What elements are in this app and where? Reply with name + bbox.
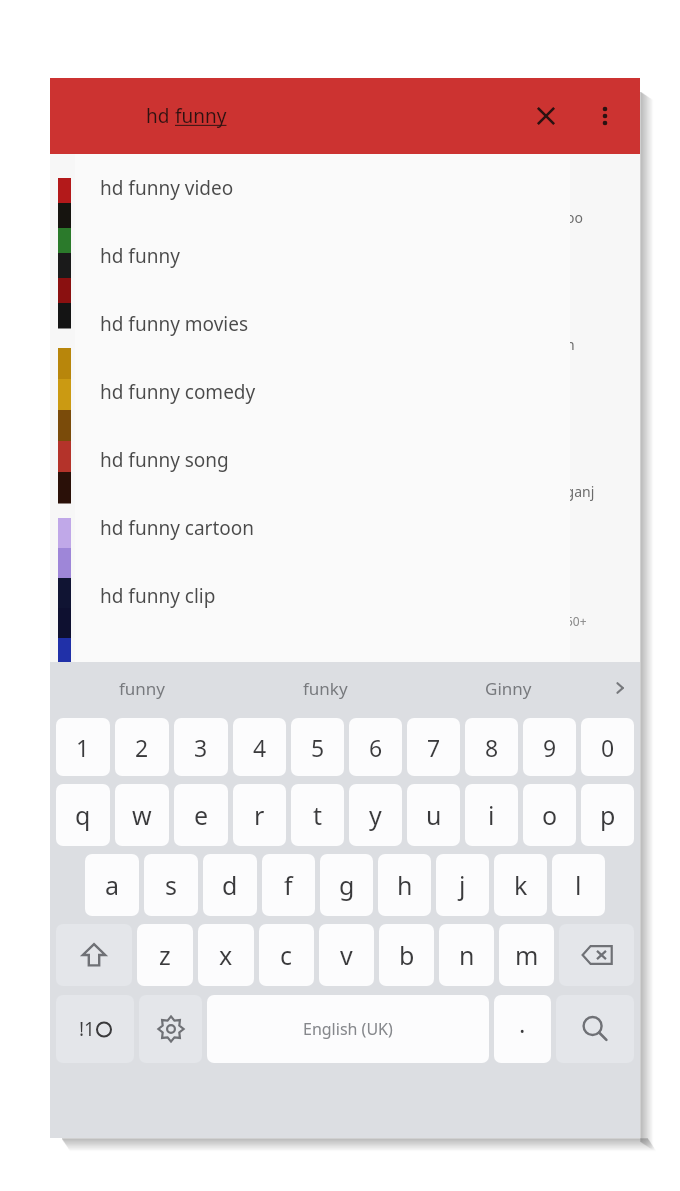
button[interactable]: l	[552, 854, 605, 916]
button[interactable]: More suggestions	[600, 662, 640, 714]
staticText: funny	[175, 103, 227, 129]
staticText: g	[339, 868, 355, 902]
staticText: 2	[135, 732, 149, 763]
staticText: x	[219, 938, 233, 972]
button[interactable]: a	[85, 854, 139, 916]
staticText: d	[222, 868, 238, 902]
button[interactable]: b	[379, 924, 434, 986]
button[interactable]: Search	[556, 995, 634, 1063]
button[interactable]: r	[233, 784, 286, 846]
button[interactable]: hd funny clip	[75, 562, 570, 630]
staticText: 7	[427, 732, 441, 763]
staticText: hd funny video	[100, 175, 234, 201]
button[interactable]: k	[494, 854, 547, 916]
staticText: hd funny	[100, 243, 180, 269]
button[interactable]: v	[319, 924, 374, 986]
staticText: f	[284, 868, 293, 902]
button[interactable]: 9	[523, 718, 576, 776]
button[interactable]: Ginny	[417, 662, 600, 714]
button[interactable]: 4	[233, 718, 286, 776]
button[interactable]: e	[174, 784, 228, 846]
button[interactable]: hd funny movies	[75, 290, 570, 358]
staticText: w	[132, 798, 152, 832]
staticText: j	[459, 868, 466, 902]
staticText: funky	[303, 677, 348, 700]
staticText: hd	[146, 103, 175, 129]
staticText: o	[542, 798, 558, 832]
button[interactable]: 7	[407, 718, 460, 776]
staticText: b	[399, 938, 415, 972]
staticText: !1	[79, 1016, 95, 1042]
button[interactable]: q	[56, 784, 110, 846]
button[interactable]: hd funny song	[75, 426, 570, 494]
button[interactable]: y	[349, 784, 402, 846]
button[interactable]: hd funny video	[75, 154, 570, 222]
staticText: q	[75, 798, 91, 832]
button[interactable]: d	[203, 854, 257, 916]
button[interactable]: c	[259, 924, 314, 986]
staticText: 1	[76, 732, 90, 763]
staticText: u	[426, 798, 442, 832]
staticText: 5	[311, 732, 325, 763]
button[interactable]: More options	[574, 85, 636, 147]
staticText: 8	[485, 732, 499, 763]
button[interactable]: 1	[56, 718, 110, 776]
button[interactable]: 6	[349, 718, 402, 776]
staticText: hd funny cartoon	[100, 515, 254, 541]
button[interactable]: hd funny comedy	[75, 358, 570, 426]
button[interactable]: p	[581, 784, 634, 846]
button[interactable]: hd funny cartoon	[75, 494, 570, 562]
button[interactable]: 5	[291, 718, 344, 776]
button[interactable]: 2	[115, 718, 169, 776]
staticText: Ginny	[485, 677, 532, 700]
staticText: hd funny song	[100, 447, 229, 473]
button[interactable]: n	[439, 924, 494, 986]
staticText: v	[340, 938, 353, 972]
staticText: z	[159, 938, 171, 972]
button[interactable]: j	[436, 854, 489, 916]
button[interactable]: 0	[581, 718, 634, 776]
button[interactable]: x	[198, 924, 254, 986]
button[interactable]: g	[320, 854, 373, 916]
staticText: t	[313, 798, 323, 832]
staticText: h	[397, 868, 413, 902]
button[interactable]: Clear search	[518, 88, 574, 144]
button[interactable]: Keyboard settings	[139, 995, 202, 1063]
staticText: oo	[566, 208, 583, 227]
button[interactable]: t	[291, 784, 344, 846]
staticText: 3	[194, 732, 208, 763]
staticText: 50+	[566, 613, 587, 629]
staticText: l	[575, 868, 582, 902]
button[interactable]: Backspace	[559, 924, 634, 986]
button[interactable]: .	[494, 995, 551, 1063]
staticText: p	[600, 798, 616, 832]
staticText: lganj	[562, 482, 595, 501]
button[interactable]: u	[407, 784, 460, 846]
staticText: n	[566, 335, 575, 354]
button[interactable]: Symbols and emoji	[56, 995, 134, 1063]
button[interactable]: Shift	[56, 924, 132, 986]
staticText: 4	[253, 732, 267, 763]
button[interactable]: z	[137, 924, 193, 986]
staticText: hd funny comedy	[100, 379, 256, 405]
staticText: s	[165, 868, 177, 902]
button[interactable]: funky	[234, 662, 417, 714]
staticText: hd funny movies	[100, 311, 249, 337]
staticText: hd funny clip	[100, 583, 216, 609]
staticText: e	[194, 798, 209, 832]
staticText: r	[254, 798, 265, 832]
button[interactable]: 3	[174, 718, 228, 776]
button[interactable]: funny	[50, 662, 234, 714]
button[interactable]: 8	[465, 718, 518, 776]
button[interactable]: hd funny	[75, 222, 570, 290]
button[interactable]: English (UK)	[207, 995, 489, 1063]
button[interactable]: h	[378, 854, 431, 916]
button[interactable]: w	[115, 784, 169, 846]
staticText: a	[105, 868, 120, 902]
button[interactable]: s	[144, 854, 198, 916]
button[interactable]: o	[523, 784, 576, 846]
button[interactable]: f	[262, 854, 315, 916]
button[interactable]: i	[465, 784, 518, 846]
staticText: i	[488, 798, 495, 832]
button[interactable]: m	[499, 924, 554, 986]
